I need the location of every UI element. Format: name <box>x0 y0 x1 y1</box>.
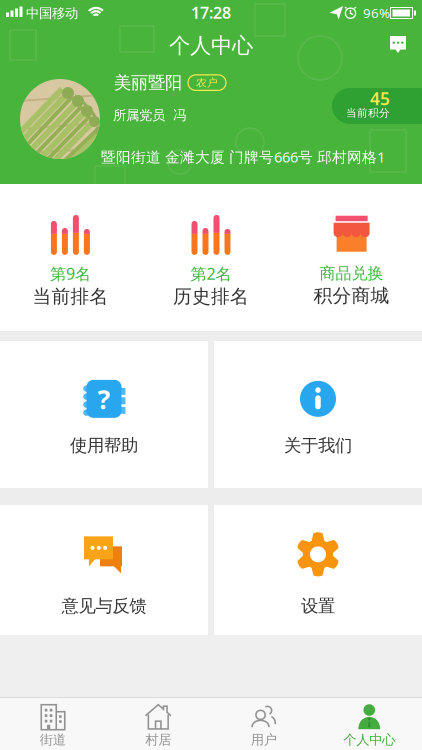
staticText: 村居 <box>145 732 171 748</box>
button[interactable]: 当前积分 45 <box>332 88 422 124</box>
staticText: 街道 <box>40 732 66 748</box>
staticText: 商品兑换 <box>320 264 384 283</box>
button[interactable]: 意见与反馈 <box>0 494 208 635</box>
button[interactable]: 个人中心 <box>316 698 422 750</box>
staticText: 关于我们 <box>284 435 352 456</box>
staticText: 第9名 <box>50 263 91 284</box>
button[interactable]: 第9名 <box>0 211 141 304</box>
staticText: 设置 <box>301 595 335 617</box>
staticText: 所属党员 冯 <box>113 107 186 123</box>
button[interactable]: 消息 <box>390 36 406 54</box>
staticText: 个人中心 <box>169 32 253 59</box>
staticText: 当前排名 <box>32 285 108 308</box>
staticText: 17:28 <box>191 2 231 23</box>
staticText: 第2名 <box>190 263 231 284</box>
button[interactable]: ? <box>0 335 208 488</box>
button[interactable]: 商品兑换 <box>281 212 422 303</box>
staticText: 意见与反馈 <box>61 595 146 617</box>
staticText: 45 <box>370 87 390 110</box>
button[interactable]: 关于我们 <box>214 335 422 488</box>
staticText: 96% <box>363 4 390 22</box>
button[interactable]: 街道 <box>0 698 105 750</box>
staticText: 个人中心 <box>343 732 395 748</box>
staticText: 农户 <box>196 76 218 89</box>
staticText: 历史排名 <box>173 285 249 308</box>
staticText: 用户 <box>251 732 277 748</box>
button[interactable]: 用户 <box>211 698 316 750</box>
staticText: 当前积分 <box>346 106 390 120</box>
button[interactable]: 村居 <box>105 698 211 750</box>
staticText: ? <box>97 381 110 416</box>
staticText: 积分商城 <box>314 284 390 307</box>
staticText: 美丽暨阳 <box>114 72 182 93</box>
button[interactable]: 第2名 <box>141 211 281 304</box>
button[interactable]: 设置 <box>214 494 422 635</box>
staticText: 中国移动 <box>26 5 78 21</box>
staticText: 使用帮助 <box>70 435 138 456</box>
staticText: 暨阳街道 金滩大厦 门牌号666号 邱村网格1 <box>101 147 385 166</box>
